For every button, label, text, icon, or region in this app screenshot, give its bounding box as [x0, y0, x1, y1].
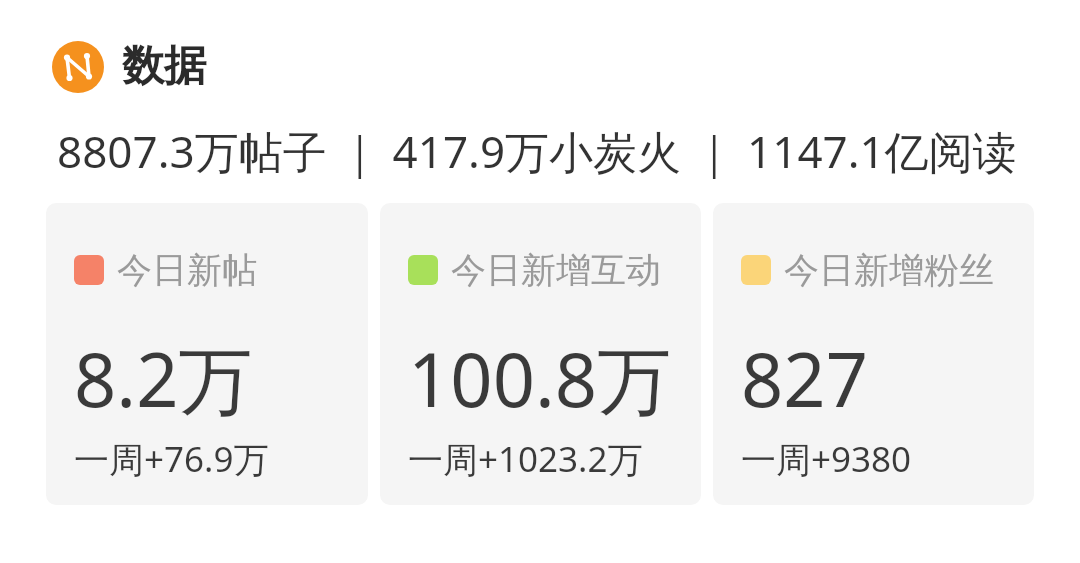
staticText: 8807.3万帖子 ｜ 417.9万小炭火 ｜ 1147.1亿阅读 — [57, 121, 1017, 181]
staticText: 8.2万 — [74, 328, 253, 429]
staticText: 一周+9380 — [741, 435, 912, 483]
staticText: 今日新帖 — [117, 248, 257, 292]
button[interactable]: 今日新增互动 — [380, 203, 701, 505]
staticText: 一周+1023.2万 — [408, 435, 643, 483]
other: App logo — [52, 41, 104, 93]
staticText: 今日新增粉丝 — [784, 248, 994, 292]
staticText: 今日新增互动 — [451, 248, 661, 292]
staticText: 100.8万 — [408, 328, 672, 429]
staticText: 一周+76.9万 — [74, 435, 269, 483]
button[interactable]: 今日新增粉丝 — [713, 203, 1034, 505]
button[interactable]: 今日新帖 — [46, 203, 368, 505]
staticText: 数据 — [122, 40, 206, 93]
staticText: 827 — [741, 328, 868, 429]
button[interactable]: App logo — [52, 40, 206, 93]
